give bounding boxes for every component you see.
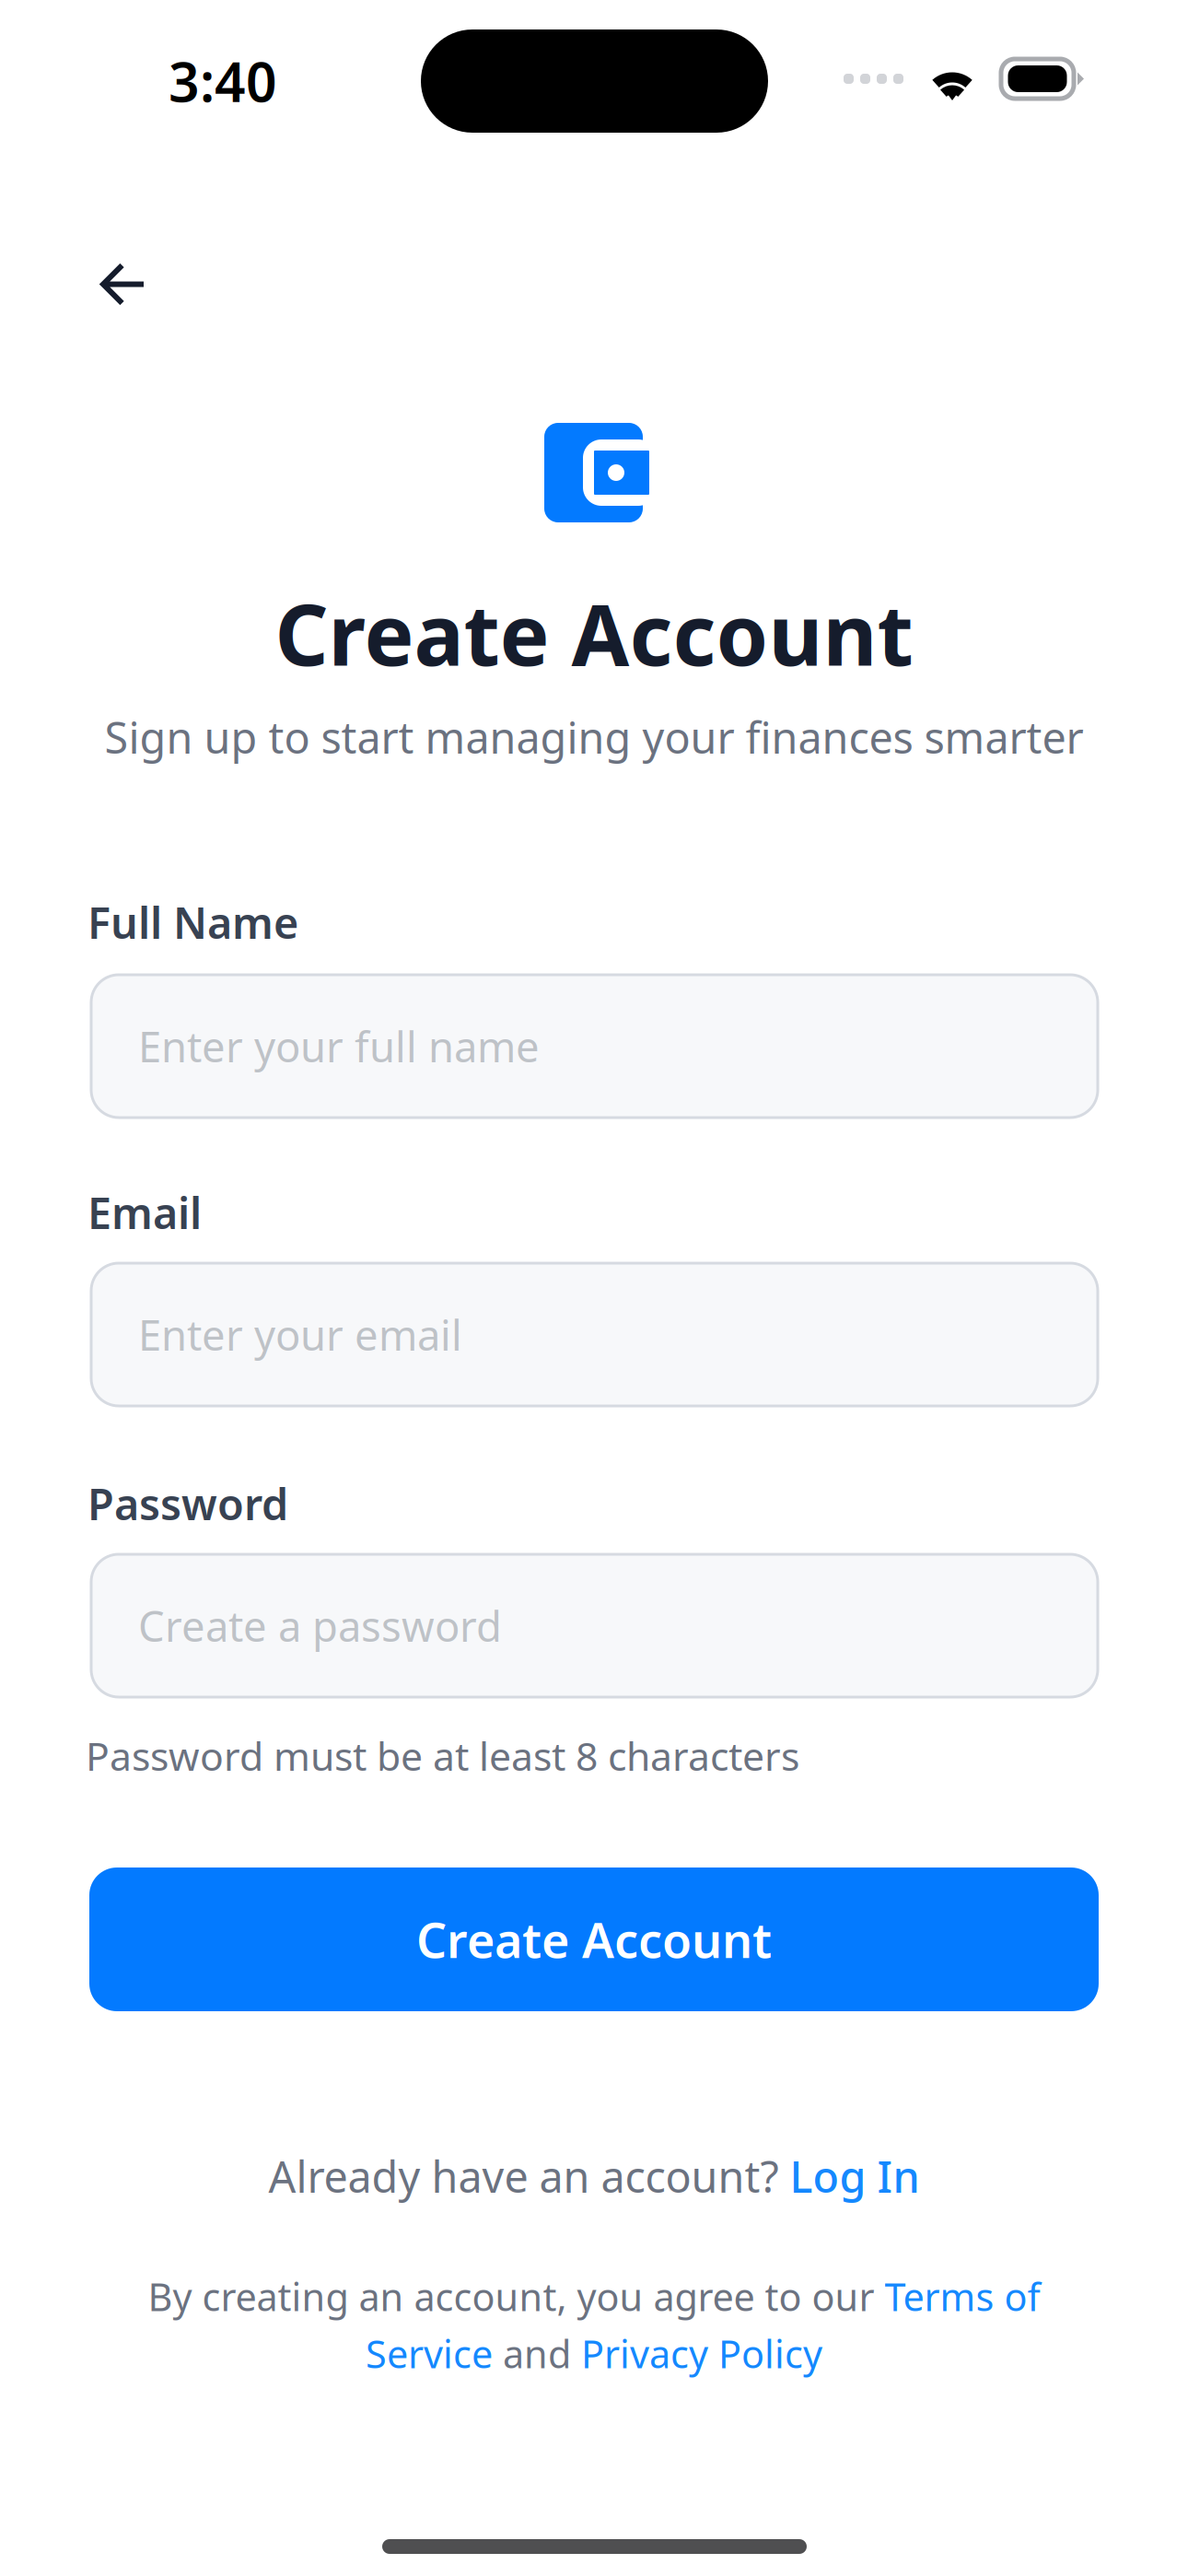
staticText: By creating an account, you agree to our (148, 2271, 885, 2322)
staticText: Password (87, 1475, 288, 1532)
staticText: Already have an account? (268, 2148, 790, 2205)
button[interactable]: Create a password (91, 1554, 1098, 1697)
staticText: and (493, 2328, 581, 2379)
staticText: Enter your full name (138, 1018, 540, 1074)
staticText: Terms of (885, 2271, 1040, 2322)
button[interactable]: Create Account (89, 1868, 1099, 2011)
staticText: Create a password (138, 1598, 502, 1653)
button[interactable]: Enter your full name (91, 975, 1098, 1118)
button[interactable]: Service (366, 2328, 493, 2379)
staticText: Full Name (87, 894, 298, 951)
button[interactable]: Privacy Policy (581, 2328, 822, 2379)
staticText: 3:40 (169, 45, 277, 117)
button[interactable]: Back (76, 239, 170, 330)
button[interactable]: Log In (790, 2148, 920, 2205)
button[interactable]: Terms of (885, 2271, 1040, 2322)
staticText: Email (87, 1184, 202, 1241)
staticText: Log In (790, 2148, 920, 2205)
staticText: Enter your email (138, 1307, 462, 1362)
staticText: Privacy Policy (581, 2328, 822, 2379)
staticText: Password must be at least 8 characters (86, 1729, 799, 1782)
staticText: Sign up to start managing your finances … (105, 708, 1083, 766)
staticText: Service (366, 2328, 493, 2379)
button[interactable]: Enter your email (91, 1263, 1098, 1406)
staticText: Create Account (275, 578, 913, 689)
staticText: Create Account (416, 1908, 772, 1971)
